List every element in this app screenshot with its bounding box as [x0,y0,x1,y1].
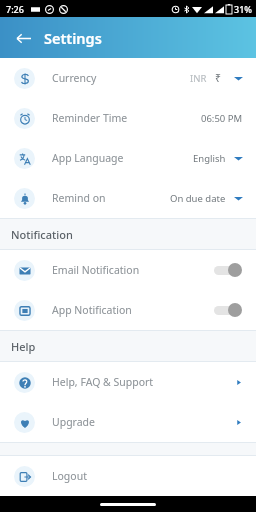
staticText: On due date [170,192,226,205]
button[interactable]: App Language [0,138,256,178]
staticText: Notification [11,227,73,242]
button[interactable]: Currency [0,58,256,98]
staticText: English [193,152,226,165]
staticText: Email Notification [52,263,140,277]
staticText: Help, FAQ & Support [52,375,154,389]
staticText: App Notification [52,303,132,317]
button[interactable]: Upgrade [0,402,256,442]
staticText: Remind on [52,191,106,205]
staticText: Upgrade [52,415,95,429]
button[interactable]: Email Notification [0,250,256,290]
staticText: 31% [234,3,252,15]
button[interactable]: Remind on [0,178,256,218]
staticText: Currency [52,71,97,85]
button[interactable]: Toggle [213,262,243,278]
staticText: ₹ [215,71,222,85]
staticText: Settings [44,28,102,48]
staticText: INR [190,72,207,85]
staticText: App Language [52,151,124,165]
staticText: Reminder Time [52,111,128,125]
button[interactable]: Back [10,25,36,51]
staticText: Logout [52,469,87,483]
button[interactable]: Reminder Time [0,98,256,138]
staticText: Help [11,339,36,354]
button[interactable]: Toggle [213,302,243,318]
button[interactable]: Help, FAQ & Support [0,362,256,402]
staticText: 7:26 [6,3,24,15]
staticText: 06:50 PM [201,112,243,125]
button[interactable]: App Notification [0,290,256,330]
button[interactable]: Logout [0,456,256,496]
